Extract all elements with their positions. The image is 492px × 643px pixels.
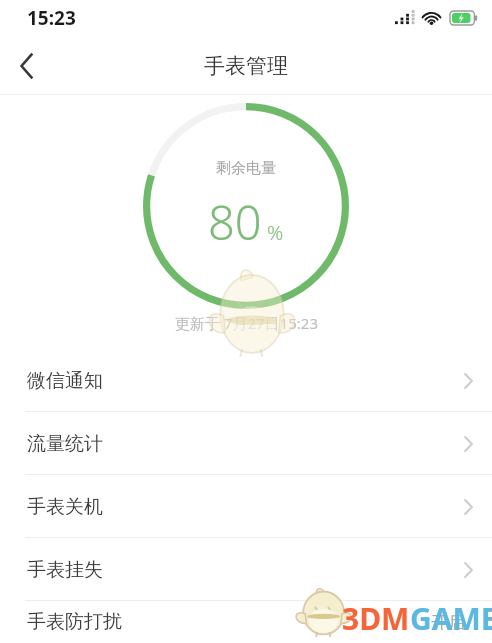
staticText: 手表挂失: [27, 558, 103, 582]
staticText: 微信通知: [27, 369, 103, 393]
staticText: 更新于 7月27日15:23: [175, 313, 318, 333]
staticText: 手表管理: [204, 53, 288, 79]
staticText: 手表关机: [27, 495, 103, 519]
button[interactable]: Back: [0, 39, 54, 93]
staticText: 3DM: [342, 598, 410, 639]
staticText: %: [267, 219, 284, 246]
button[interactable]: 手表关机: [0, 475, 492, 538]
staticText: 剩余电量: [216, 159, 276, 178]
staticText: 80: [208, 190, 262, 254]
button[interactable]: 手表防打扰: [0, 601, 492, 643]
button[interactable]: 微信通知: [0, 349, 492, 412]
button[interactable]: 流量统计: [0, 412, 492, 475]
staticText: 15:23: [27, 5, 76, 31]
button[interactable]: 手表挂失: [0, 538, 492, 601]
staticText: GAME: [410, 598, 492, 639]
staticText: 流量统计: [27, 432, 103, 456]
staticText: 开启: [431, 612, 465, 633]
staticText: 手表防打扰: [27, 610, 122, 634]
